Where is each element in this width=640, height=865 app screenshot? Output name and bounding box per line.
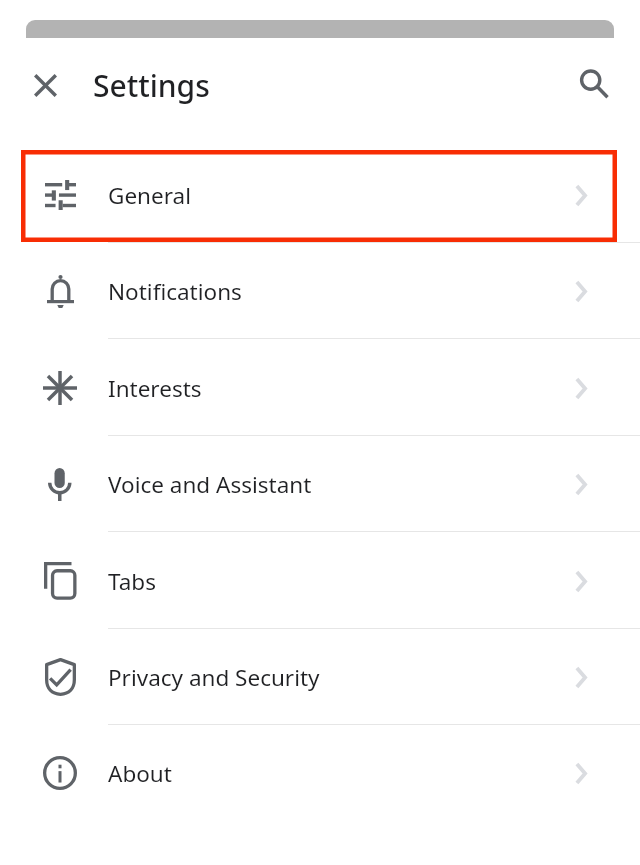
button[interactable]: Search (569, 59, 618, 108)
staticText: Privacy and Security (108, 662, 320, 693)
button[interactable]: Interests (0, 340, 640, 436)
staticText: Notifications (108, 276, 242, 307)
button[interactable]: Privacy and Security (0, 629, 640, 725)
staticText: Voice and Assistant (108, 469, 312, 500)
staticText: Interests (108, 373, 202, 404)
staticText: General (108, 180, 191, 211)
button[interactable]: Voice and Assistant (0, 436, 640, 532)
button[interactable]: General (0, 147, 640, 243)
button[interactable]: Close (21, 61, 70, 110)
button[interactable]: Notifications (0, 243, 640, 339)
staticText: Tabs (108, 566, 156, 597)
staticText: About (108, 758, 172, 789)
button[interactable]: About (0, 725, 640, 821)
button[interactable]: Tabs (0, 533, 640, 629)
staticText: Settings (93, 65, 210, 106)
